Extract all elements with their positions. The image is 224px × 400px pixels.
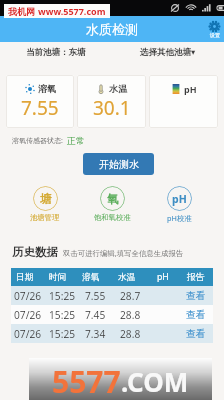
button[interactable]: 开始测水	[83, 153, 154, 175]
staticText: 水质检测	[86, 21, 138, 37]
button[interactable]: 07/26	[11, 305, 213, 324]
staticText: 查看	[186, 309, 206, 321]
button[interactable]: 氧	[82, 186, 142, 222]
staticText: 双击可进行编辑,填写全信息生成报告	[63, 248, 184, 258]
staticText: 饱和氧校准	[94, 213, 131, 222]
staticText: pH	[184, 83, 197, 95]
staticText: 溶氧传感器状态:	[12, 136, 63, 146]
staticText: 报告	[187, 272, 205, 283]
staticText: pH	[157, 271, 169, 283]
staticText: 池塘管理	[30, 213, 60, 222]
staticText: 7.45	[85, 308, 106, 322]
staticText: www.5577.com	[38, 5, 106, 17]
button[interactable]: 当前池塘：东塘	[0, 47, 112, 58]
staticText: pH	[172, 192, 187, 206]
staticText: 时间	[49, 272, 67, 283]
staticText: 正常	[67, 136, 85, 147]
staticText: 15:25	[49, 289, 76, 303]
staticText: 塘	[40, 192, 52, 206]
staticText: 查看	[186, 290, 206, 302]
staticText: 7.55	[21, 95, 59, 121]
staticText: 7.55	[85, 289, 106, 303]
staticText: 溶氧	[82, 272, 100, 283]
button[interactable]: 07/26	[11, 286, 213, 305]
staticText: 氧	[107, 192, 119, 206]
staticText: 查看	[186, 328, 206, 340]
staticText: 30.1	[93, 95, 131, 121]
staticText: 溶氧	[38, 83, 56, 94]
button[interactable]: pH	[149, 75, 218, 128]
button[interactable]: 选择其他池塘▾	[112, 47, 224, 58]
staticText: 28.7	[120, 289, 141, 303]
staticText: 07/26	[14, 289, 42, 303]
staticText: 28.8	[120, 327, 141, 341]
staticText: 15:25	[49, 327, 76, 341]
button[interactable]: 日期	[11, 268, 213, 286]
staticText: 28.8	[120, 308, 141, 322]
staticText: .COM	[121, 364, 189, 399]
button[interactable]: pH	[149, 186, 209, 223]
button[interactable]: 水温	[77, 75, 146, 128]
staticText: 设置	[210, 32, 220, 38]
button[interactable]: 溶氧	[6, 75, 74, 128]
staticText: 开始测水	[99, 158, 139, 171]
staticText: 日期	[16, 272, 34, 283]
staticText: 07/26	[14, 327, 42, 341]
button[interactable]: 塘	[15, 186, 75, 222]
staticText: 07/26	[14, 308, 42, 322]
staticText: 15:25	[49, 308, 76, 322]
staticText: 5577	[52, 361, 121, 400]
staticText: 当前池塘：东塘	[26, 47, 86, 58]
staticText: 历史数据	[12, 245, 58, 259]
staticText: 水温	[118, 272, 136, 283]
staticText: pH校准	[167, 213, 192, 223]
staticText: 我机网	[8, 6, 35, 17]
staticText: 7.34	[85, 327, 106, 341]
staticText: 选择其他池塘▾	[140, 47, 196, 58]
staticText: 水温	[109, 83, 127, 94]
button[interactable]: 07/26	[11, 324, 213, 343]
button[interactable]: 设置	[209, 21, 220, 38]
